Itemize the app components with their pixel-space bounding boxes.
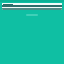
button[interactable]: Card header — [2, 3, 62, 10]
button[interactable]: Card header — [2, 3, 62, 5]
button[interactable]: List row two — [2, 8, 62, 10]
button[interactable]: Primary action — [26, 14, 38, 16]
